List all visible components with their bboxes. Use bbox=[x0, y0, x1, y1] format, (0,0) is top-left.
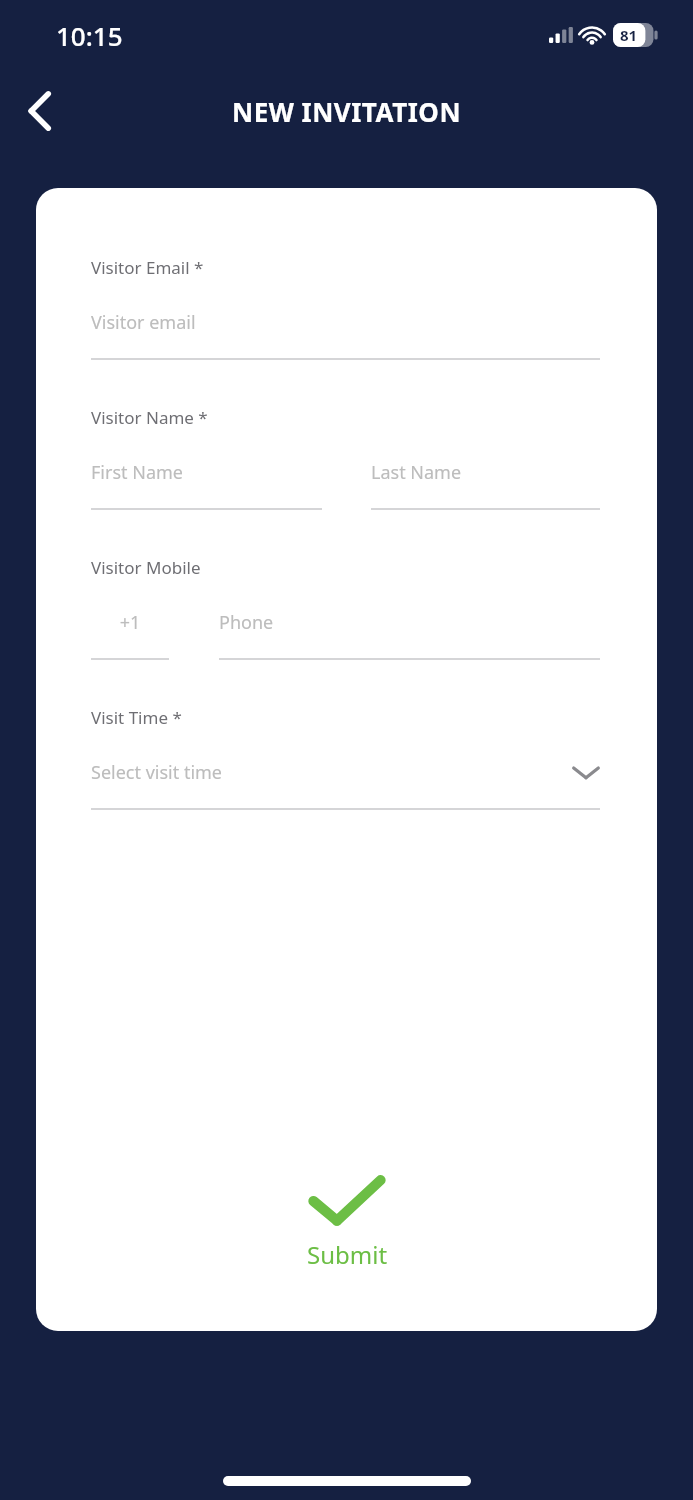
staticText: NEW INVITATION bbox=[232, 94, 462, 129]
staticText: 10:15 bbox=[56, 18, 123, 53]
button[interactable]: First Name bbox=[91, 460, 322, 510]
staticText: Visitor Email * bbox=[91, 256, 204, 279]
staticText: Visitor Mobile bbox=[91, 556, 201, 579]
button[interactable]: Last Name bbox=[371, 460, 600, 510]
button[interactable]: Visitor email bbox=[91, 310, 600, 360]
staticText: Visitor Name * bbox=[91, 406, 208, 429]
staticText: +1 bbox=[91, 610, 169, 635]
button[interactable]: +1 bbox=[91, 610, 169, 660]
button[interactable]: Back bbox=[8, 79, 72, 143]
button[interactable]: Select visit time bbox=[91, 760, 600, 810]
staticText: Visitor email bbox=[91, 310, 196, 335]
button[interactable]: Phone bbox=[219, 610, 600, 660]
staticText: Submit bbox=[307, 1238, 388, 1271]
staticText: 81 bbox=[620, 25, 638, 45]
staticText: Last Name bbox=[371, 460, 462, 485]
staticText: Phone bbox=[219, 610, 274, 635]
staticText: Visit Time * bbox=[91, 706, 182, 729]
button[interactable]: Submit bbox=[265, 1164, 429, 1279]
staticText: First Name bbox=[91, 460, 183, 485]
staticText: Select visit time bbox=[91, 760, 223, 785]
